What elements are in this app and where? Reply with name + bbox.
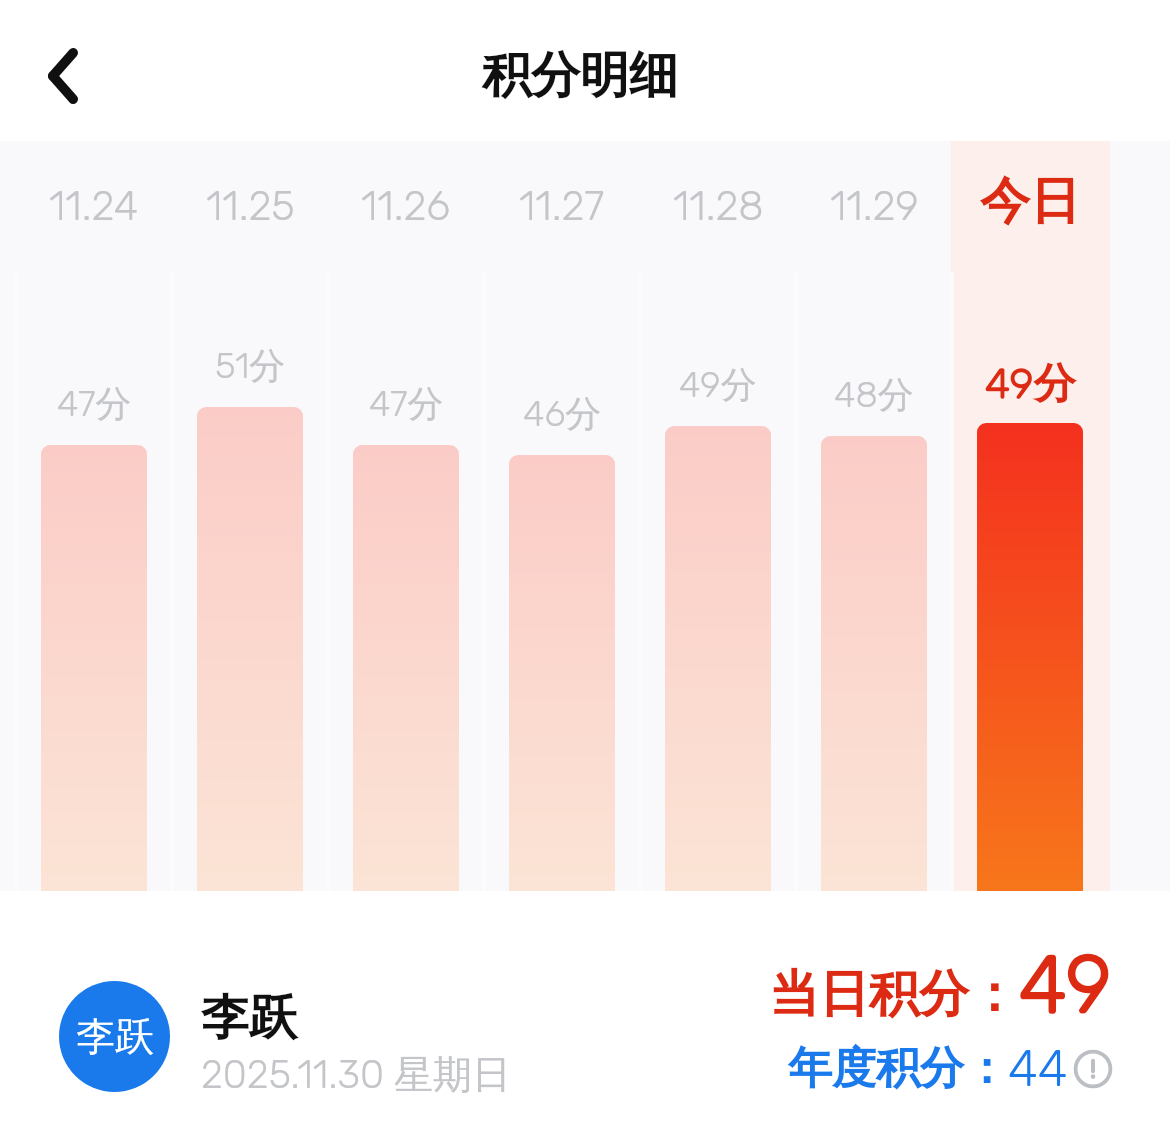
button[interactable]: 11.28 (640, 141, 796, 891)
staticText: 李跃 (76, 1012, 154, 1061)
staticText: 44 (1008, 1039, 1068, 1098)
staticText: 11.27 (519, 182, 605, 231)
staticText: 11.29 (830, 182, 919, 231)
button[interactable]: 11.26 (328, 141, 484, 891)
staticText: 2025.11.30 星期日 (201, 1050, 512, 1099)
staticText: 当日积分： (769, 963, 1019, 1026)
staticText: 积分明细 (482, 45, 678, 107)
button[interactable]: 11.27 (484, 141, 640, 891)
button[interactable]: Info (1074, 1050, 1112, 1088)
staticText: 47分 (57, 381, 132, 426)
staticText: 48分 (834, 372, 914, 417)
staticText: 今日 (980, 170, 1080, 233)
staticText: 46分 (523, 391, 602, 436)
staticText: 11.24 (49, 182, 139, 231)
staticText: 李跃 (201, 988, 297, 1048)
staticText: 47分 (369, 381, 444, 426)
button[interactable]: Back (19, 27, 107, 115)
button[interactable]: 11.25 (172, 141, 328, 891)
staticText: 年度积分： (788, 1041, 1008, 1096)
button[interactable]: 11.29 (796, 141, 952, 891)
button[interactable]: 今日 (952, 141, 1108, 891)
button[interactable]: 李跃 (59, 981, 170, 1092)
staticText: 51分 (215, 343, 286, 388)
staticText: 11.25 (206, 182, 295, 231)
staticText: 49分 (679, 362, 757, 407)
staticText: 49 (1019, 938, 1112, 1033)
staticText: 11.26 (361, 182, 451, 231)
staticText: 11.28 (673, 182, 764, 231)
staticText: 49分 (985, 358, 1076, 411)
button[interactable]: 11.24 (16, 141, 172, 891)
